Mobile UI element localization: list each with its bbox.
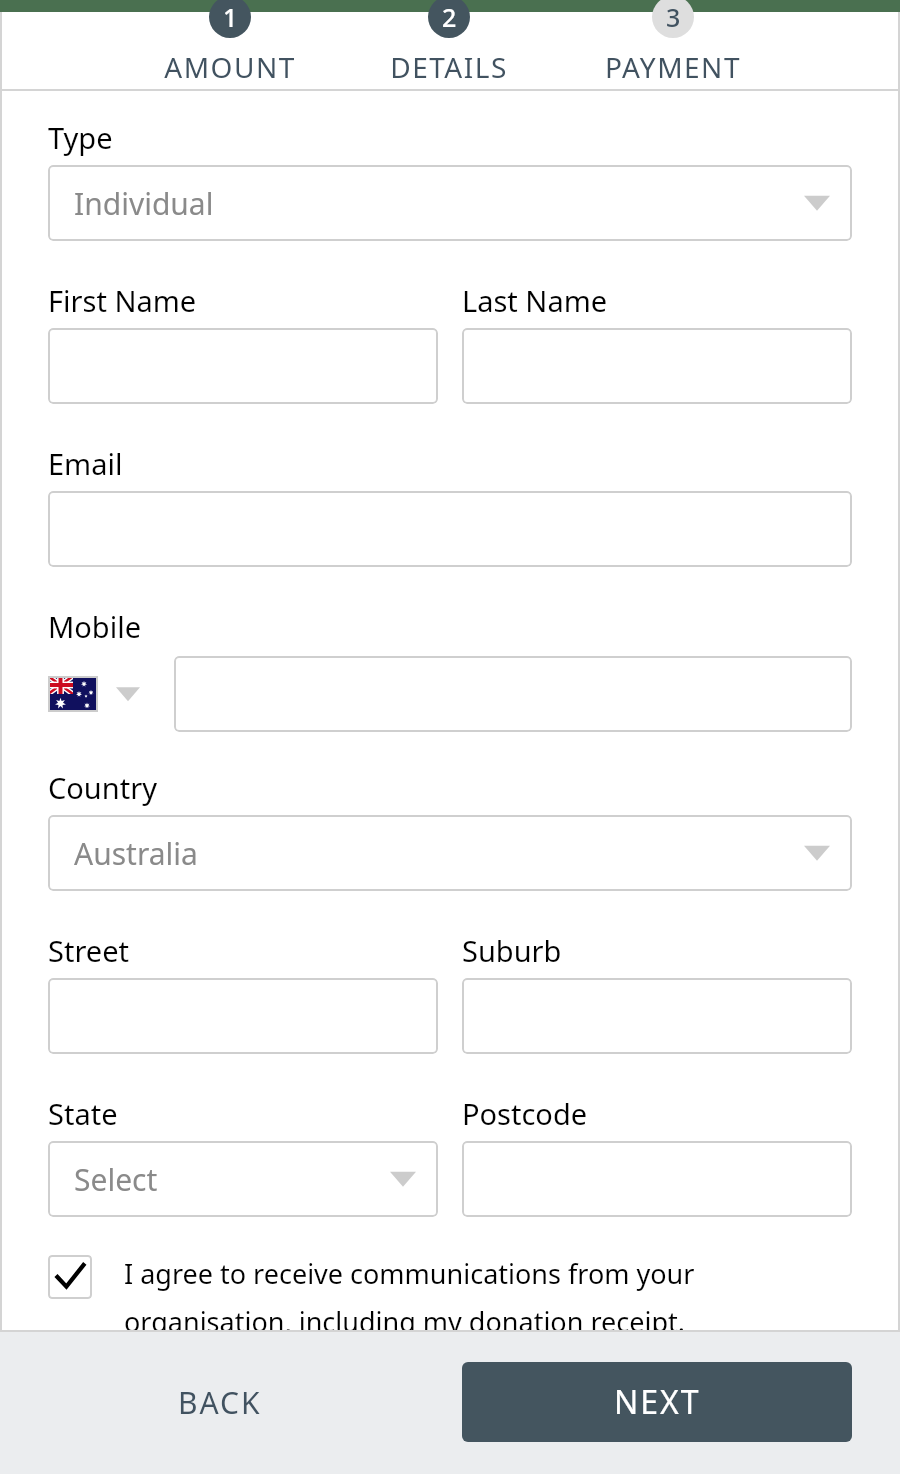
button[interactable]: 2 — [339, 0, 558, 86]
button[interactable]: 3 — [558, 0, 788, 86]
staticText: Type — [48, 118, 113, 157]
staticText: Postcode — [462, 1094, 588, 1133]
staticText: State — [48, 1094, 118, 1133]
staticText: Country — [48, 768, 157, 807]
staticText: BACK — [178, 1382, 262, 1423]
staticText: Australia — [74, 833, 198, 874]
staticText: 1 — [223, 0, 238, 34]
button[interactable]: Individual — [48, 165, 852, 241]
staticText: 3 — [666, 0, 681, 34]
button[interactable]: BACK — [150, 1364, 290, 1441]
button[interactable]: Text field — [48, 328, 438, 404]
button[interactable]: NEXT — [462, 1362, 852, 1442]
staticText: NEXT — [614, 1380, 701, 1424]
staticText: Street — [48, 931, 129, 970]
button[interactable]: Text field — [48, 491, 852, 567]
staticText: Suburb — [462, 931, 562, 970]
staticText: PAYMENT — [605, 48, 741, 86]
button[interactable]: Select — [48, 1141, 438, 1217]
staticText: AMOUNT — [164, 48, 296, 86]
button[interactable]: Agree to communications checkbox — [48, 1255, 852, 1340]
staticText: 2 — [442, 0, 457, 34]
button[interactable]: Australia — [48, 815, 852, 891]
staticText: Individual — [74, 183, 214, 224]
staticText: First Name — [48, 281, 197, 320]
staticText: I agree to receive communications from y… — [124, 1255, 852, 1340]
staticText: Email — [48, 444, 123, 483]
other: Agree to communications checkbox — [48, 1255, 92, 1299]
button[interactable]: 1 — [120, 0, 339, 86]
button[interactable]: Text field — [462, 1141, 852, 1217]
staticText: DETAILS — [390, 48, 508, 86]
button[interactable]: Text field — [174, 656, 852, 732]
staticText: Select — [74, 1159, 158, 1200]
button[interactable]: Text field — [462, 978, 852, 1054]
button[interactable]: Select country code — [48, 676, 144, 712]
button[interactable]: Text field — [462, 328, 852, 404]
staticText: Last Name — [462, 281, 608, 320]
staticText: Mobile — [48, 607, 142, 646]
button[interactable]: Text field — [48, 978, 438, 1054]
